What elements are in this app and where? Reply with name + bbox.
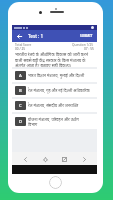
staticText: Total Score — [15, 43, 32, 47]
button[interactable]: C — [12, 99, 97, 112]
button[interactable]: Home — [49, 176, 62, 189]
button[interactable]: Bookmark — [39, 153, 51, 165]
staticText: 00 / 25 — [15, 47, 26, 51]
staticText: भारत विज्ञान मंत्रालय, मुम्बई और दिल्ली — [28, 73, 85, 78]
button[interactable]: Back — [15, 32, 24, 41]
button[interactable]: A — [12, 69, 97, 82]
staticText: A — [19, 73, 22, 79]
staticText: रेल मंत्रालय, गृह और नई दिल्ली अधिकारिक — [28, 88, 90, 93]
staticText: Question 1/25 — [72, 43, 94, 47]
button[interactable]: Share — [58, 153, 70, 165]
staticText: D — [19, 119, 23, 125]
button[interactable]: SUBMIT — [79, 32, 94, 40]
button[interactable]: Back — [19, 153, 31, 165]
staticText: रेल मंत्रालय, संसदीय और जनशक्ति — [28, 103, 79, 108]
staticText: C — [19, 103, 22, 109]
button[interactable]: Next — [78, 153, 90, 165]
button[interactable]: B — [12, 84, 97, 97]
staticText: भारतीय रेलवे के औद्योगिक विकास को जारी क… — [15, 52, 94, 67]
button[interactable]: D — [12, 114, 97, 129]
staticText: SUBMIT — [80, 34, 93, 38]
staticText: योजना मंत्रालय, परिवहन और उद्योग विभाग — [28, 117, 79, 127]
staticText: Test : 1 — [28, 33, 44, 39]
staticText: B — [19, 88, 22, 94]
staticText: 07 : 55 — [84, 47, 94, 51]
